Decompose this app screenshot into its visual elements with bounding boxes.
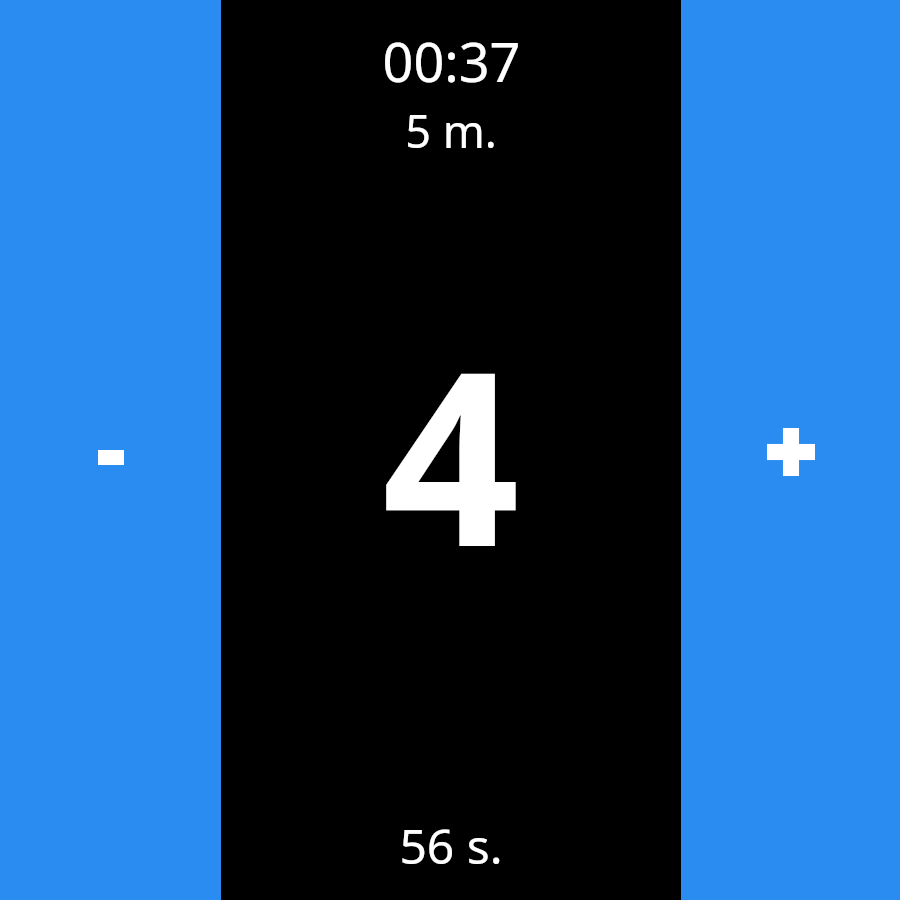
button[interactable]: Increase [681, 0, 900, 900]
staticText: 4 [382, 289, 520, 616]
staticText: 00:37 [382, 24, 521, 98]
button[interactable]: Decrease [0, 0, 221, 900]
staticText: 5 m. [405, 100, 497, 161]
button[interactable]: 00:37 [221, 0, 681, 900]
staticText: 56 s. [399, 813, 503, 878]
